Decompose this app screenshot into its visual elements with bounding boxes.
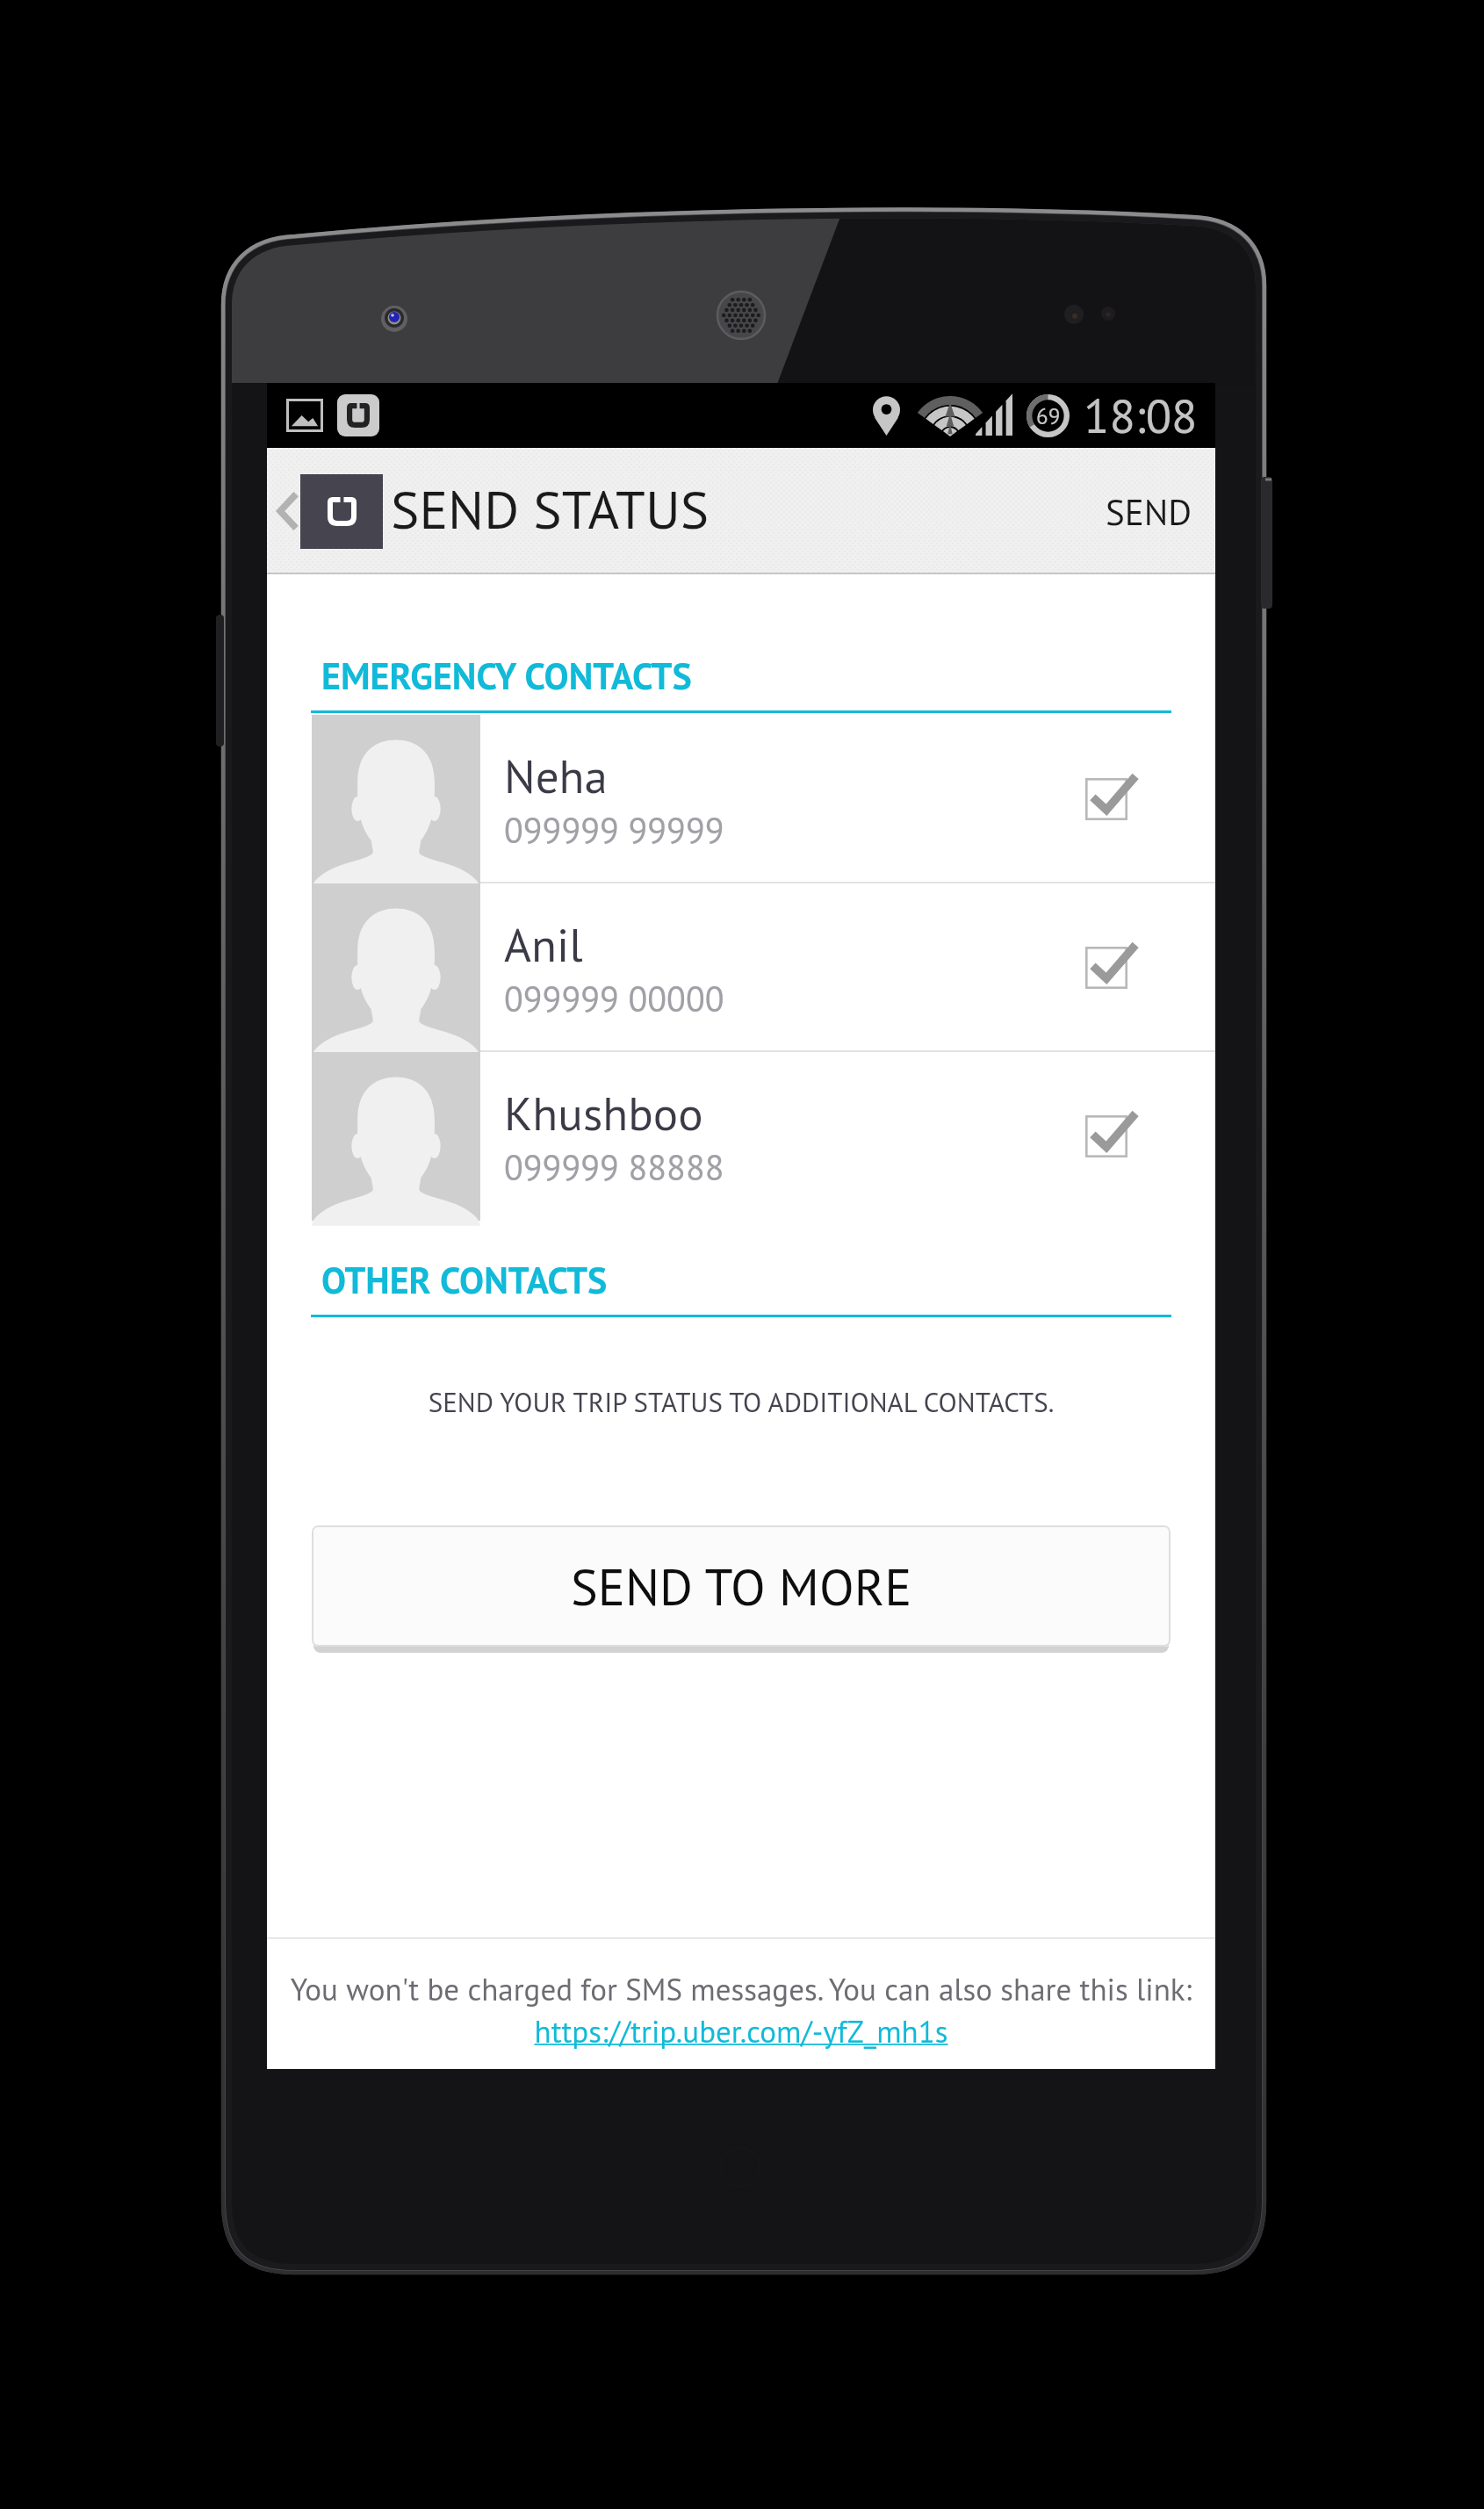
staticText: 099999 00000 [504, 976, 724, 1021]
staticText: Khushboo [504, 1083, 703, 1143]
button[interactable]: Neha [267, 715, 1215, 883]
button[interactable]: Anil [267, 883, 1215, 1052]
button[interactable]: SEND TO MORE [312, 1525, 1171, 1647]
staticText: 69 [1036, 402, 1061, 430]
button[interactable]: Back [267, 448, 383, 574]
button[interactable]: https://trip.uber.com/-yfZ_mh1s [267, 2011, 1215, 2051]
staticText: SEND YOUR TRIP STATUS TO ADDITIONAL CONT… [267, 1384, 1215, 1419]
staticText: SEND [1106, 488, 1192, 535]
staticText: Anil [504, 914, 583, 975]
staticText: OTHER CONTACTS [321, 1256, 608, 1303]
staticText: SEND TO MORE [571, 1554, 912, 1619]
button[interactable]: SEND [1070, 448, 1215, 574]
staticText: 18:08 [1084, 385, 1198, 446]
button[interactable]: Khushboo [267, 1052, 1215, 1221]
staticText: Neha [504, 746, 608, 806]
staticText: https://trip.uber.com/-yfZ_mh1s [267, 2011, 1215, 2051]
staticText: 099999 88888 [504, 1144, 724, 1190]
staticText: 099999 99999 [504, 807, 724, 853]
staticText: You won't be charged for SMS messages. Y… [267, 1969, 1215, 2008]
staticText: SEND STATUS [391, 474, 710, 544]
staticText: EMERGENCY CONTACTS [321, 652, 692, 699]
